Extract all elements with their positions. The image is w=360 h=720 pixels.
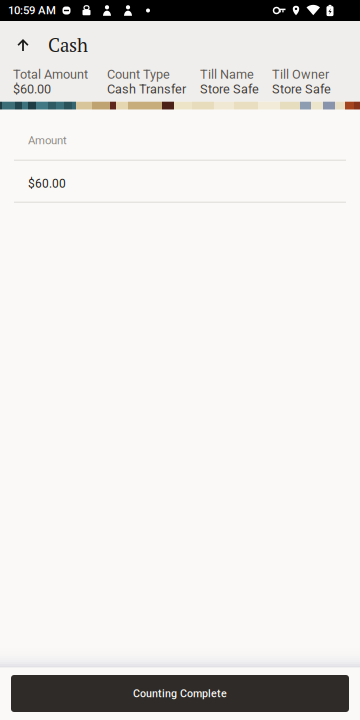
staticText: Cash xyxy=(48,33,88,57)
staticText: $60.00 xyxy=(13,82,51,97)
staticText: Total Amount xyxy=(13,67,88,82)
staticText: Till Owner xyxy=(272,67,329,82)
staticText: Store Safe xyxy=(200,82,259,97)
button[interactable]: $60.00 xyxy=(0,161,360,203)
button[interactable]: Amount xyxy=(0,110,360,161)
staticText: Counting Complete xyxy=(133,687,227,700)
staticText: Amount xyxy=(28,134,67,147)
staticText: Store Safe xyxy=(272,82,331,97)
staticText: Count Type xyxy=(107,67,170,82)
staticText: 10:59 AM xyxy=(8,4,56,17)
button[interactable]: Back xyxy=(7,28,39,62)
button[interactable]: Counting Complete xyxy=(11,675,349,712)
staticText: Cash Transfer xyxy=(107,82,186,97)
staticText: $60.00 xyxy=(28,177,66,191)
staticText: Till Name xyxy=(200,67,254,82)
